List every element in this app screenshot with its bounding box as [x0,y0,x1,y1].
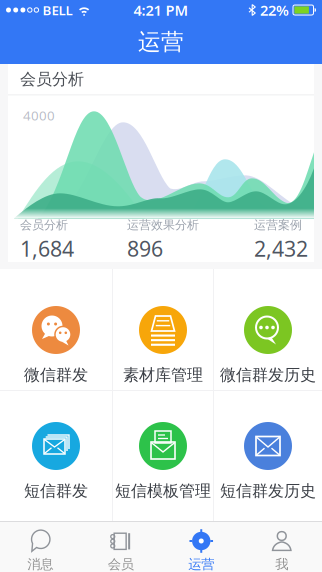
button[interactable]: 会员 [80,522,161,572]
button[interactable]: 我 [241,522,322,572]
staticText: 22% [260,0,289,20]
staticText: 4:21 PM [133,0,188,20]
staticText: 会员分析 [20,218,68,232]
staticText: BELL [43,1,73,19]
staticText: 我 [275,556,288,572]
staticText: 1,684 [20,234,74,263]
staticText: 短信群发历史 [220,481,316,501]
button[interactable]: 消息 [0,522,80,572]
button[interactable]: 微信群发历史 [214,269,322,390]
staticText: 4000 [23,106,55,124]
staticText: 896 [127,234,163,263]
staticText: 短信模板管理 [115,481,211,501]
staticText: 运营案例 [254,218,302,232]
button[interactable]: 短信模板管理 [113,391,213,521]
staticText: 运营效果分析 [127,218,199,232]
staticText: 短信群发 [24,481,88,501]
staticText: 2,432 [254,234,308,263]
staticText: 消息 [27,556,53,572]
button[interactable]: 素材库管理 [113,269,213,390]
staticText: 运营 [138,28,184,56]
staticText: 素材库管理 [123,365,203,385]
button[interactable]: 微信群发 [0,269,112,390]
staticText: 微信群发 [24,365,88,385]
button[interactable]: 短信群发 [0,391,112,521]
button[interactable]: 运营 [161,522,241,572]
staticText: 会员 [108,556,134,572]
staticText: 微信群发历史 [220,365,316,385]
staticText: 运营 [188,556,214,572]
button[interactable]: 短信群发历史 [214,391,322,521]
staticText: 会员分析 [20,69,84,89]
